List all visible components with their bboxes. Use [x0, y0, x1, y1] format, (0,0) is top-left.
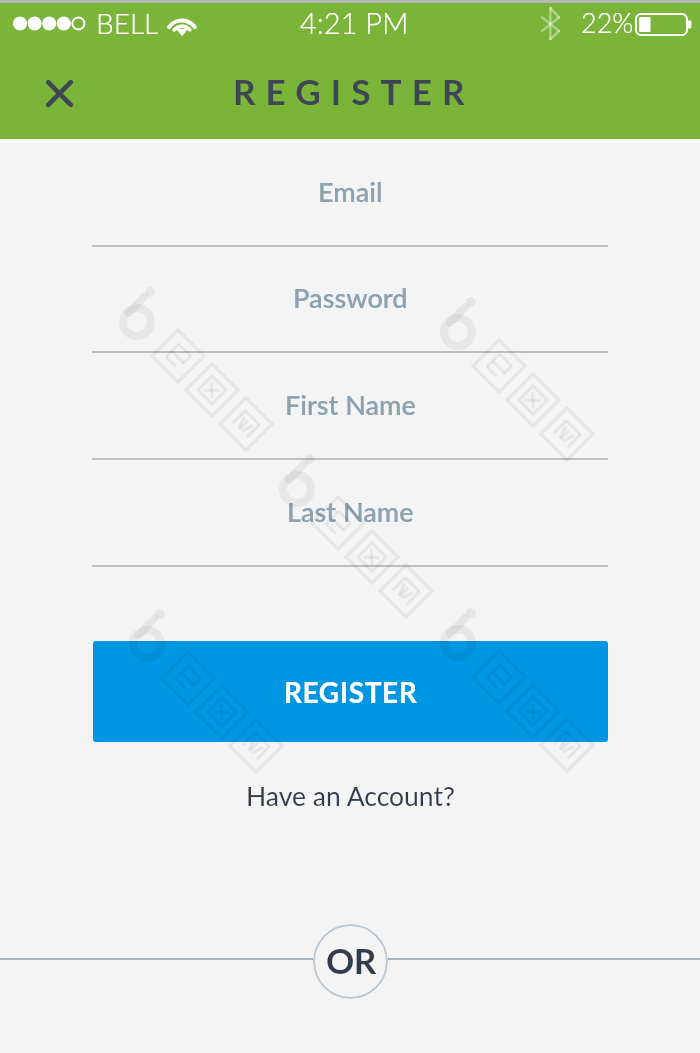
staticText: Password [293, 281, 408, 313]
staticText: REGISTER [233, 70, 475, 112]
button[interactable]: Password [92, 266, 608, 353]
staticText: 4:21 PM [300, 5, 409, 40]
staticText: BELL [96, 6, 159, 40]
button[interactable]: REGISTER [93, 641, 608, 742]
staticText: 22% [581, 6, 634, 38]
button[interactable]: Last Name [92, 480, 608, 567]
staticText: Have an Account? [246, 780, 455, 812]
button[interactable]: OR [313, 924, 388, 999]
button[interactable]: First Name [92, 373, 608, 460]
staticText: Email [318, 175, 383, 207]
staticText: OR [326, 939, 376, 981]
staticText: REGISTER [284, 675, 418, 709]
staticText: First Name [285, 388, 416, 420]
button[interactable]: Close [33, 67, 86, 120]
staticText: Last Name [287, 495, 414, 527]
button[interactable]: Have an Account? [224, 772, 476, 820]
button[interactable]: Email [92, 160, 608, 247]
